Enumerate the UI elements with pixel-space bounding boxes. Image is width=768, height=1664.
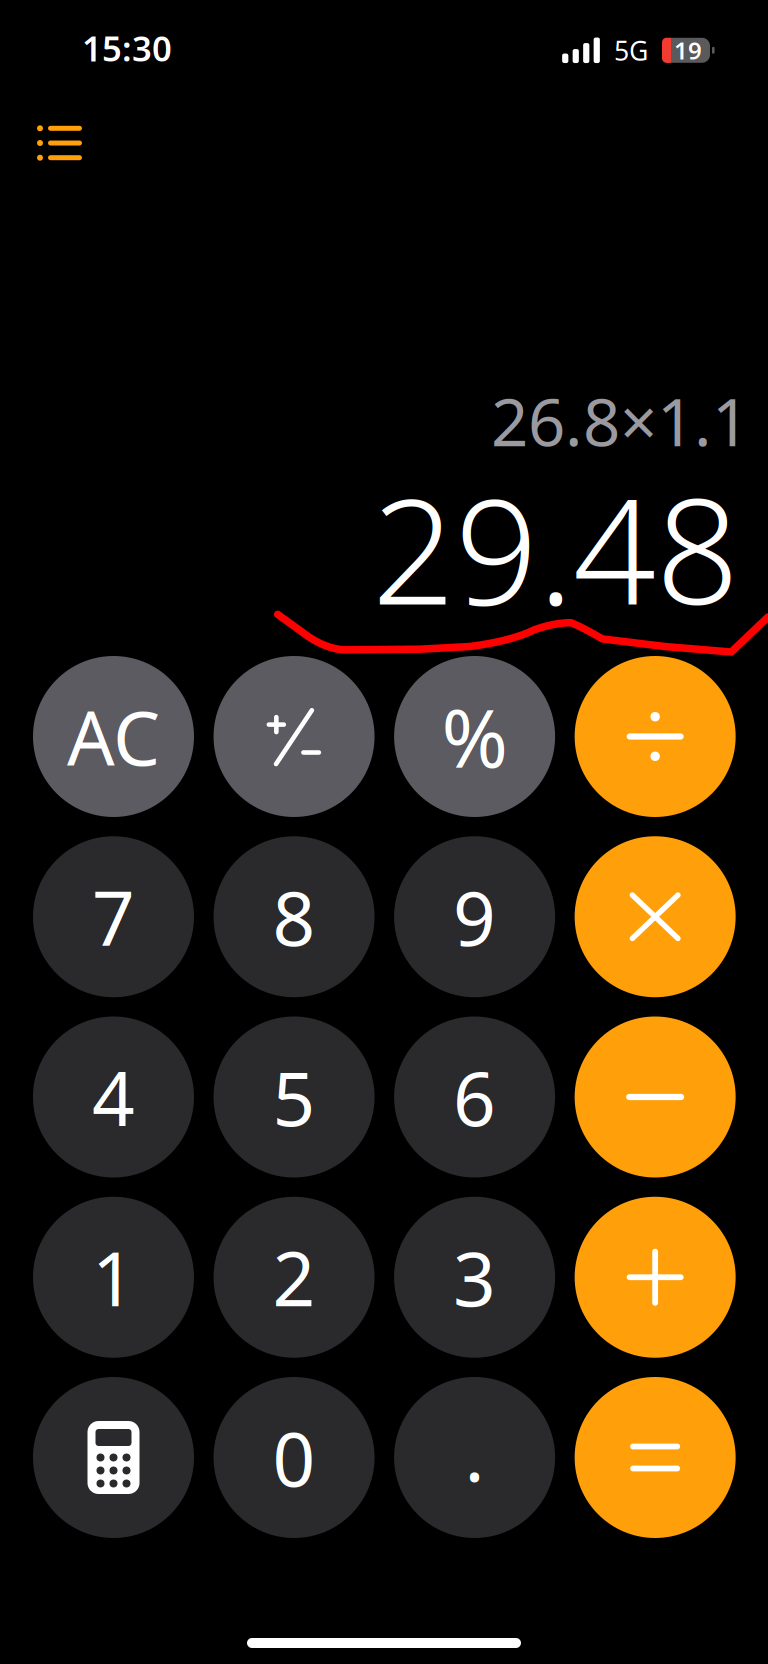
staticText: % xyxy=(442,683,508,790)
button[interactable]: Calculator mode xyxy=(33,1377,194,1538)
staticText: 9 xyxy=(453,867,496,966)
staticText: 7 xyxy=(92,867,135,966)
staticText: 8 xyxy=(273,867,316,966)
button[interactable]: % xyxy=(394,656,555,817)
button[interactable]: 7 xyxy=(33,836,194,997)
button[interactable]: 3 xyxy=(394,1197,555,1358)
button[interactable]: 6 xyxy=(394,1016,555,1177)
button[interactable]: 1 xyxy=(33,1197,194,1358)
staticText: 5G xyxy=(614,33,648,68)
staticText: AC xyxy=(67,687,160,786)
staticText: 19 xyxy=(674,34,702,66)
button[interactable]: 9 xyxy=(394,836,555,997)
staticText: 1 xyxy=(92,1228,135,1327)
staticText: . xyxy=(465,1403,485,1502)
button[interactable]: Minus xyxy=(575,1016,736,1177)
staticText: 6 xyxy=(453,1047,496,1147)
button[interactable]: 8 xyxy=(214,836,375,997)
staticText: 2 xyxy=(273,1228,316,1327)
button[interactable]: . xyxy=(394,1377,555,1538)
staticText: 4 xyxy=(92,1047,135,1147)
staticText: 5 xyxy=(273,1047,316,1147)
button[interactable]: AC xyxy=(33,656,194,817)
button[interactable]: Divide xyxy=(575,656,736,817)
button[interactable]: 5 xyxy=(214,1016,375,1177)
staticText: 0 xyxy=(273,1408,316,1507)
staticText: 3 xyxy=(453,1228,496,1327)
button[interactable]: Equals xyxy=(575,1377,736,1538)
button[interactable]: Multiply xyxy=(575,836,736,997)
button[interactable]: Plus xyxy=(575,1197,736,1358)
button[interactable]: 2 xyxy=(214,1197,375,1358)
button[interactable]: 4 xyxy=(33,1016,194,1177)
staticText: 26.8×1.1 xyxy=(491,378,749,464)
button[interactable]: 0 xyxy=(214,1377,375,1538)
button[interactable]: History xyxy=(23,112,96,174)
staticText: 15:30 xyxy=(82,25,172,71)
staticText: 29.48 xyxy=(372,451,739,644)
button[interactable]: Plus Minus xyxy=(214,656,375,817)
